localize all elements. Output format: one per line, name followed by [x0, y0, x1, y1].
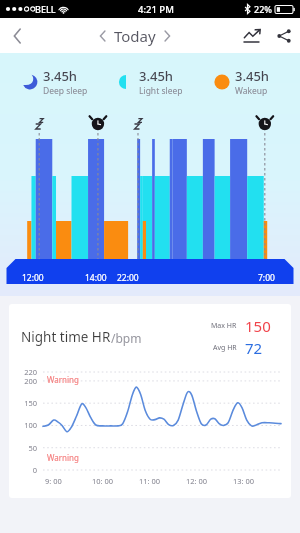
staticText: Wakeup — [235, 85, 268, 97]
staticText: Deep sleep — [43, 85, 88, 97]
staticText: 3.45h — [235, 67, 269, 85]
staticText: 22:00 — [117, 272, 139, 284]
staticText: Today — [114, 26, 156, 46]
button[interactable]: Share — [268, 18, 300, 53]
staticText: BELL — [35, 3, 56, 15]
staticText: 14:00 — [85, 272, 107, 284]
staticText: 200 — [9, 376, 37, 386]
staticText: Warning — [47, 374, 79, 385]
staticText: /bpm — [111, 330, 142, 346]
staticText: 10: 00 — [92, 476, 114, 486]
staticText: 150 — [9, 398, 37, 408]
staticText: 3.45h — [43, 67, 77, 85]
staticText: 9: 00 — [45, 476, 62, 486]
staticText: 12:00 — [22, 272, 44, 284]
button[interactable]: Today — [93, 23, 177, 49]
staticText: 220 — [9, 367, 37, 377]
staticText: Avg HR — [213, 343, 237, 353]
button[interactable]: Trends — [236, 18, 268, 53]
staticText: 12: 00 — [186, 476, 208, 486]
staticText: 4:21 PM — [138, 3, 174, 16]
button[interactable]: 3.45h — [198, 67, 294, 97]
staticText: 150 — [245, 316, 271, 336]
staticText: Max HR — [211, 321, 237, 331]
staticText: 50 — [9, 443, 37, 453]
staticText: 11: 00 — [139, 476, 161, 486]
staticText: 22% — [254, 3, 272, 15]
button[interactable]: Back — [0, 18, 34, 53]
button[interactable]: 3.45h — [6, 67, 102, 97]
staticText: 100 — [9, 420, 37, 430]
button[interactable]: 3.45h — [102, 67, 198, 97]
staticText: Night time HR — [21, 328, 111, 346]
staticText: Light sleep — [139, 85, 183, 97]
staticText: 3.45h — [139, 67, 173, 85]
button[interactable]: Night time HR — [9, 304, 291, 498]
staticText: Warning — [47, 452, 79, 463]
staticText: 13: 00 — [233, 476, 255, 486]
staticText: 0 — [9, 465, 37, 475]
staticText: 72 — [245, 338, 263, 358]
staticText: 7:00 — [258, 272, 275, 284]
